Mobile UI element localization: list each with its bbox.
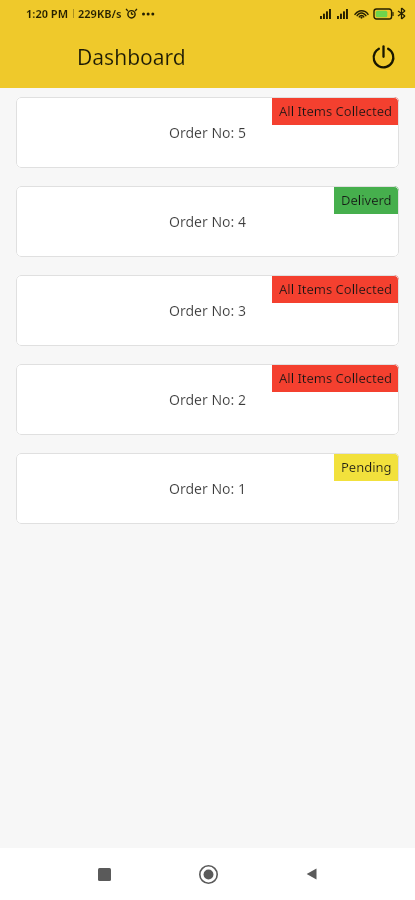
button[interactable]: Power (361, 35, 405, 79)
staticText: 1:20 PM (26, 6, 69, 21)
staticText: Order No: 2 (169, 390, 246, 409)
button[interactable]: Order No: 2 (16, 364, 399, 435)
staticText: Order No: 1 (169, 479, 246, 498)
button[interactable]: Recent apps (52, 850, 156, 898)
staticText: Pending (341, 458, 392, 476)
staticText: Dashboard (77, 43, 186, 72)
button[interactable]: Order No: 3 (16, 275, 399, 346)
staticText: 229KB/s (78, 6, 122, 21)
staticText: All Items Collected (279, 369, 392, 387)
button[interactable]: Back (260, 850, 364, 898)
staticText: Order No: 3 (169, 301, 246, 320)
staticText: All Items Collected (279, 102, 392, 120)
button[interactable]: Order No: 1 (16, 453, 399, 524)
staticText: All Items Collected (279, 280, 392, 298)
staticText: Deliverd (341, 191, 392, 209)
staticText: Order No: 5 (169, 123, 246, 142)
button[interactable]: Order No: 4 (16, 186, 399, 257)
staticText: Order No: 4 (169, 212, 246, 231)
button[interactable]: Order No: 5 (16, 97, 399, 168)
button[interactable]: Home (156, 850, 260, 898)
